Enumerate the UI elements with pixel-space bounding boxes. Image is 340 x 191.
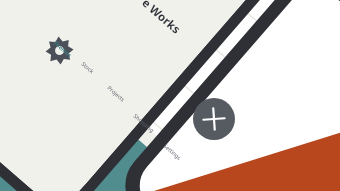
button[interactable]: Themes	[56, 16, 90, 46]
button[interactable]: Close	[193, 98, 235, 140]
button[interactable]: Shopping	[139, 98, 175, 130]
button[interactable]: Settings	[169, 128, 203, 158]
button[interactable]: Projects	[113, 70, 147, 100]
button[interactable]: Stock	[88, 44, 122, 74]
